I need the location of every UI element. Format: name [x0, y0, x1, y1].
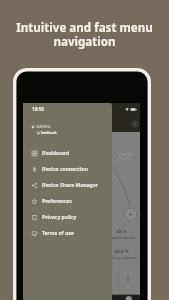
- staticText: CAMPBELL: [36, 125, 51, 129]
- staticText: Privacy policy: [42, 214, 77, 221]
- staticText: 10:10: [32, 106, 44, 112]
- staticText: navigation: [53, 34, 116, 50]
- staticText: cooling setpoint: [107, 255, 137, 260]
- staticText: Terms of use: [42, 230, 74, 237]
- button[interactable]: Privacy policy: [23, 209, 112, 225]
- staticText: Online: [121, 154, 134, 159]
- button[interactable]: Dashboard: [23, 145, 112, 161]
- staticText: Device connection: [42, 166, 88, 173]
- staticText: Preferences: [42, 198, 72, 205]
- staticText: SCIENTIFIC: [36, 129, 50, 132]
- button[interactable]: Device Share Manager: [23, 177, 112, 193]
- staticText: 66.0 °F: [115, 249, 129, 255]
- button[interactable]: Device connection: [23, 161, 112, 177]
- staticText: 45 %: [117, 229, 127, 235]
- staticText: Intuitive and fast menu: [16, 20, 153, 36]
- staticText: room humidity: [108, 235, 136, 240]
- staticText: landtouch: [41, 131, 57, 135]
- button[interactable]: Terms of use: [23, 225, 112, 241]
- staticText: Device Share Manager: [42, 182, 99, 189]
- staticText: Dashboard: [42, 150, 70, 157]
- button[interactable]: Preferences: [23, 193, 112, 209]
